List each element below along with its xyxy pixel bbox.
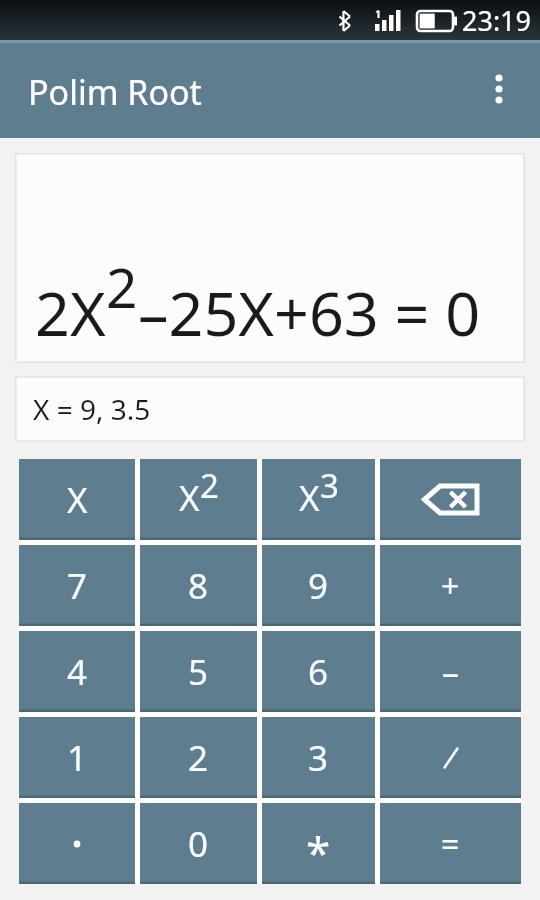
button[interactable]: X	[19, 459, 135, 540]
button[interactable]	[19, 803, 135, 884]
button[interactable]: 8	[140, 545, 257, 626]
button[interactable]: 9	[262, 545, 375, 626]
staticText: 2	[106, 249, 138, 324]
staticText: 3	[308, 734, 329, 782]
button[interactable]: 4	[19, 631, 135, 712]
button[interactable]: 5	[140, 631, 257, 712]
button[interactable]: 7	[19, 545, 135, 626]
staticText: +	[441, 564, 460, 608]
staticText: X	[299, 474, 320, 522]
staticText: 8	[188, 562, 209, 610]
staticText: 2X	[35, 271, 106, 354]
button[interactable]: 0	[140, 803, 257, 884]
button[interactable]: X	[262, 459, 375, 540]
button[interactable]: 6	[262, 631, 375, 712]
staticText: *	[306, 822, 331, 882]
button[interactable]: 3	[262, 717, 375, 798]
staticText: –25X+63 = 0	[138, 271, 481, 354]
button[interactable]	[484, 64, 514, 114]
staticText: 2	[188, 734, 209, 782]
button[interactable]	[380, 459, 521, 540]
button[interactable]	[380, 717, 521, 798]
staticText: 7	[67, 562, 88, 610]
button[interactable]: 1	[19, 717, 135, 798]
staticText: X = 9, 3.5	[33, 390, 151, 428]
button[interactable]: =	[380, 803, 521, 884]
button[interactable]: X	[140, 459, 257, 540]
staticText: 2	[200, 463, 219, 508]
staticText: 3	[320, 463, 339, 508]
staticText: 9	[308, 562, 329, 610]
staticText: X	[67, 476, 88, 524]
staticText: X	[179, 474, 200, 522]
staticText: =	[441, 822, 460, 866]
staticText: 5	[188, 648, 209, 696]
button[interactable]: *	[262, 803, 375, 884]
staticText: 4	[67, 648, 88, 696]
staticText: –	[442, 649, 459, 695]
staticText: 1	[67, 734, 88, 782]
button[interactable]: 2	[140, 717, 257, 798]
staticText: 6	[308, 648, 329, 696]
button[interactable]: –	[380, 631, 521, 712]
button[interactable]: +	[380, 545, 521, 626]
staticText: 0	[188, 820, 209, 868]
staticText: 23:19	[462, 2, 532, 39]
staticText: Polim Root	[28, 69, 202, 115]
